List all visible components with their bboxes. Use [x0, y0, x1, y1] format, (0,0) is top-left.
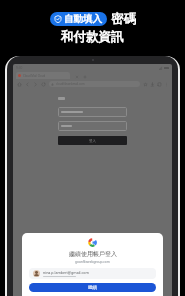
- staticText: cloudfilewebmail.com: [56, 82, 85, 86]
- button[interactable]: nina.p.lambert@gmail.com: [29, 268, 156, 279]
- button[interactable]: Profile: [156, 81, 162, 87]
- button[interactable]: New tab: [82, 74, 87, 79]
- button[interactable]: cloudfilewebmail.com: [49, 81, 140, 87]
- staticText: 登入: [89, 139, 96, 143]
- staticText: Cloud Mail Cloud: [23, 74, 46, 78]
- staticText: 和付款資訊: [61, 29, 124, 45]
- button[interactable]: 繼續: [29, 283, 156, 292]
- button[interactable]: Close tab: [74, 74, 79, 79]
- staticText: 密碼: [111, 11, 136, 27]
- button[interactable]: [58, 107, 127, 117]
- button[interactable]: [58, 121, 127, 131]
- staticText: nina.p.lambert@gmail.com: [43, 270, 89, 275]
- button[interactable]: Home: [16, 81, 22, 87]
- button[interactable]: Forward: [32, 81, 38, 87]
- button[interactable]: Bookmark: [142, 81, 148, 87]
- button[interactable]: 自動填入: [50, 12, 107, 26]
- staticText: 繼續: [88, 285, 97, 291]
- staticText: 繼續使用帳戶登入: [69, 250, 117, 258]
- button[interactable]: 登入: [58, 136, 127, 145]
- staticText: 自動填入: [64, 13, 102, 25]
- staticText: goanfilewebgroup.com: [75, 260, 110, 264]
- button[interactable]: Cloud Mail Cloud: [16, 72, 70, 79]
- button[interactable]: Downloads: [149, 81, 155, 87]
- button[interactable]: Reload: [40, 81, 46, 87]
- button[interactable]: Back: [24, 81, 30, 87]
